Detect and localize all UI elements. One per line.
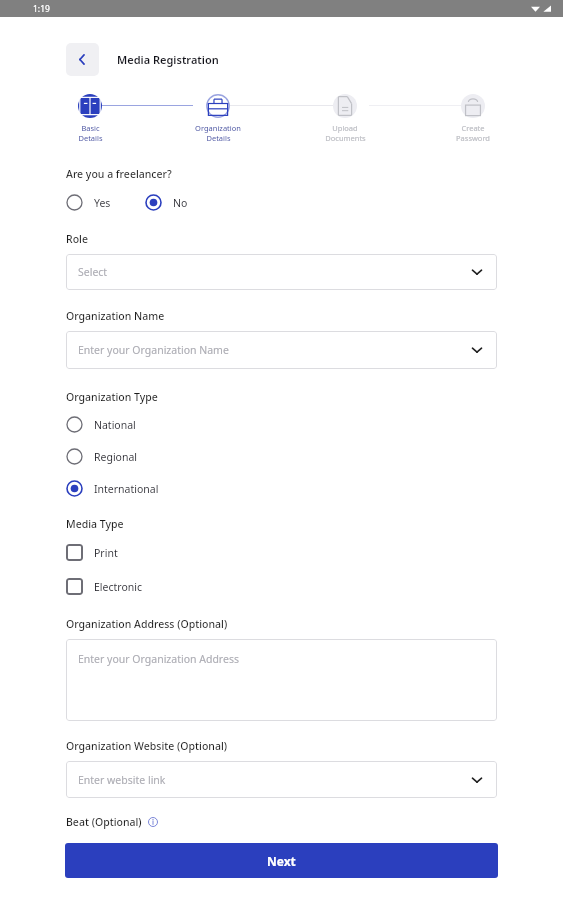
button[interactable]: International [66,478,159,499]
staticText: Organization Name [66,309,165,323]
staticText: Upload [332,123,358,133]
staticText: Details [78,133,103,143]
button[interactable]: Select [66,254,497,290]
button[interactable]: No [145,192,188,213]
staticText: 1:19 [33,3,50,15]
staticText: Media Type [66,517,124,531]
staticText: Yes [94,196,111,210]
staticText: Enter your Organization Address [78,652,239,666]
staticText: Organization Type [66,390,158,404]
staticText: Print [94,546,118,560]
staticText: Beat (Optional) [66,815,142,829]
staticText: Organization Address (Optional) [66,617,228,631]
staticText: Create [461,123,485,133]
staticText: Basic [81,123,100,133]
button[interactable]: National [66,414,136,435]
staticText: Organization Website (Optional) [66,739,228,753]
button[interactable]: Print [66,542,118,563]
staticText: Role [66,232,88,246]
staticText: Select [78,265,108,279]
button[interactable]: Regional [66,446,138,467]
button[interactable]: Back [66,43,99,76]
staticText: Electronic [94,580,143,594]
staticText: Enter your Organization Name [78,343,229,357]
button[interactable]: Enter your Organization Address [66,639,497,721]
staticText: Organization [195,123,241,133]
staticText: No [173,196,188,210]
staticText: Are you a freelancer? [66,167,172,181]
staticText: Media Registration [117,52,219,67]
staticText: International [94,482,159,496]
button[interactable]: Electronic [66,576,143,597]
button[interactable]: Upload [309,94,381,143]
staticText: Documents [325,133,366,143]
button[interactable]: Info [148,817,158,827]
button[interactable]: Organization [182,94,254,143]
staticText: Enter website link [78,773,166,787]
staticText: Details [206,133,231,143]
button[interactable]: Enter your Organization Name [66,331,497,369]
staticText: National [94,418,136,432]
button[interactable]: Create [437,94,509,143]
button[interactable]: Next [65,843,498,878]
button[interactable]: Enter website link [66,761,497,798]
button[interactable]: Yes [66,192,111,213]
staticText: Password [456,133,490,143]
staticText: Next [267,853,296,869]
button[interactable]: Basic [54,94,126,143]
staticText: Regional [94,450,138,464]
